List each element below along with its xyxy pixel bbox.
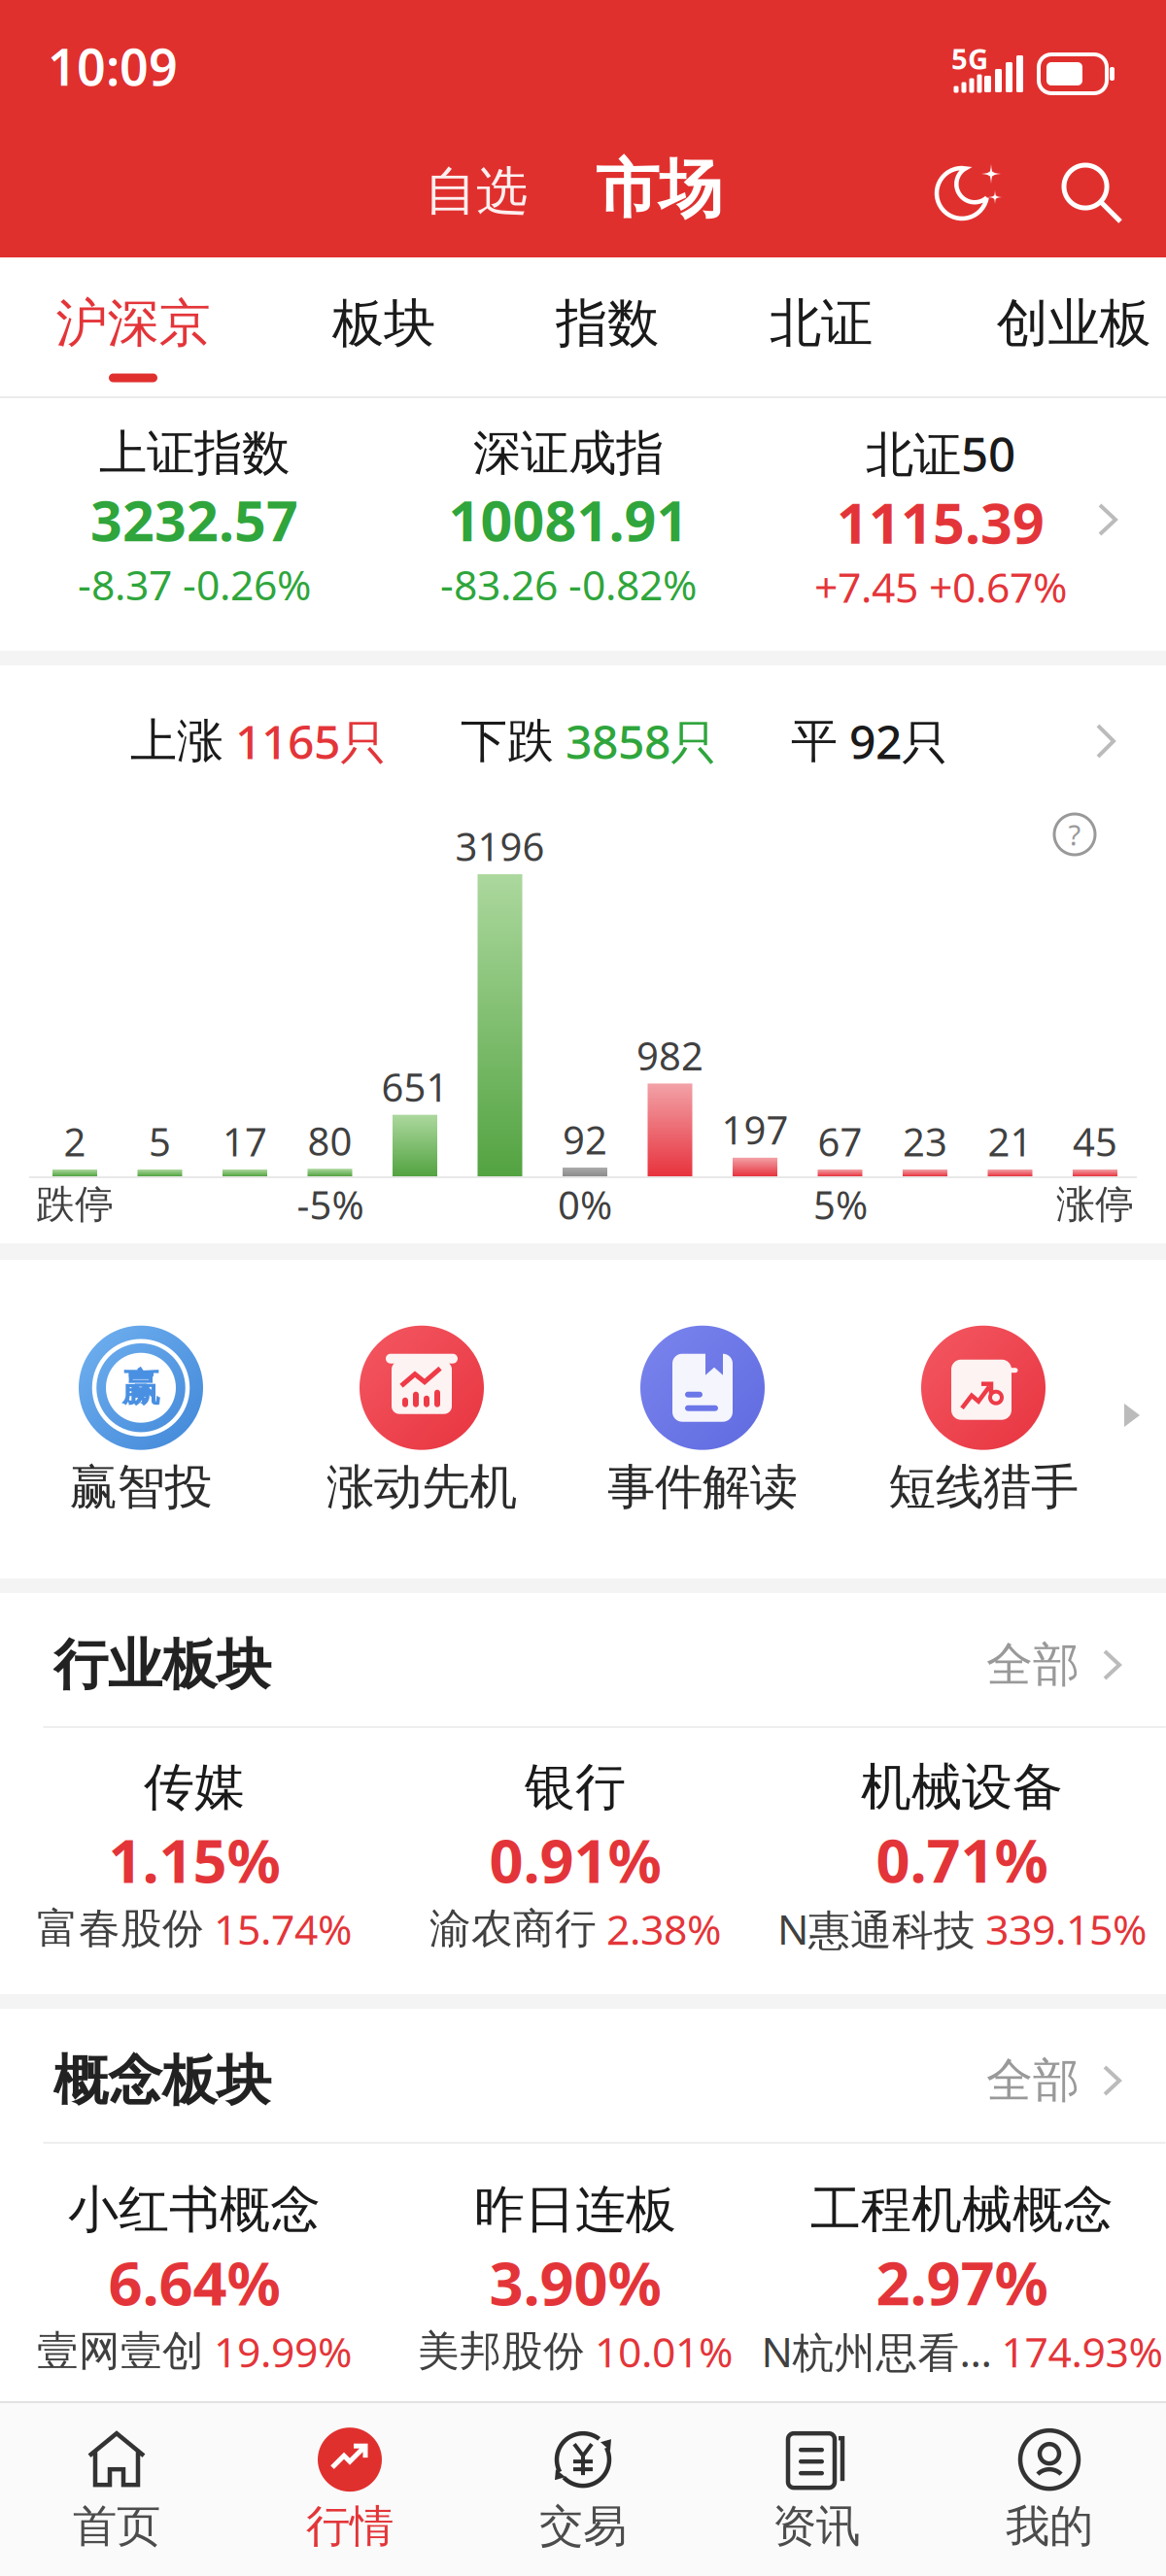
staticText: 小红书概念 — [68, 2179, 321, 2241]
button[interactable]: 北证 — [770, 292, 873, 355]
staticText: 651 — [381, 1061, 448, 1112]
button[interactable]: 市场 — [596, 150, 722, 228]
staticText: 5% — [813, 1179, 868, 1230]
button[interactable]: 传媒 — [37, 1756, 352, 1956]
button[interactable]: 工程机械概念 — [761, 2179, 1163, 2379]
staticText: 工程机械概念 — [810, 2179, 1114, 2241]
staticText: 上证指数 — [99, 424, 290, 483]
staticText: 2.97% — [876, 2243, 1048, 2322]
staticText: 19.99% — [214, 2324, 352, 2379]
staticText: -83.26 -0.82% — [440, 557, 697, 612]
button[interactable]: 指数 — [556, 292, 659, 355]
staticText: 富春股份 — [37, 1903, 204, 1954]
staticText: 10:09 — [48, 33, 178, 100]
staticText: 339.15% — [985, 1901, 1147, 1956]
button[interactable]: 板块 — [332, 292, 435, 355]
staticText: 15.74% — [214, 1901, 352, 1956]
button[interactable]: 昨日连板 — [418, 2179, 733, 2379]
staticText: 概念板块 — [53, 2047, 271, 2114]
staticText: 197 — [721, 1104, 789, 1155]
button[interactable]: 赢 — [69, 1326, 212, 1517]
button[interactable]: 北证50 — [814, 421, 1067, 614]
staticText: 涨停 — [1056, 1181, 1134, 1228]
button[interactable]: 我的 — [1006, 2428, 1093, 2554]
staticText: 创业板 — [996, 292, 1151, 355]
staticText: 3.90% — [489, 2243, 661, 2322]
staticText: 板块 — [332, 292, 435, 355]
staticText: 下跌 — [461, 712, 554, 770]
button[interactable]: 概念板块 — [0, 2047, 1166, 2114]
button[interactable]: 创业板 — [996, 292, 1151, 355]
staticText: 赢 — [121, 1364, 160, 1412]
staticText: 资讯 — [772, 2499, 860, 2554]
staticText: 跌停 — [36, 1181, 114, 1228]
staticText: 21 — [988, 1115, 1032, 1167]
button[interactable]: 事件解读 — [607, 1326, 798, 1517]
staticText: 壹网壹创 — [37, 2326, 204, 2377]
staticText: 自选 — [425, 159, 528, 223]
staticText: 3196 — [455, 820, 545, 872]
staticText: 80 — [308, 1115, 352, 1166]
button[interactable]: 搜索 — [1064, 165, 1120, 221]
staticText: 982 — [636, 1030, 703, 1081]
button[interactable]: 上证指数 — [78, 424, 311, 612]
button[interactable]: 自选 — [425, 159, 528, 223]
staticText: 67 — [818, 1115, 862, 1167]
staticText: 深证成指 — [473, 424, 664, 483]
button[interactable]: 交易 — [539, 2428, 627, 2554]
staticText: 3232.57 — [90, 483, 298, 557]
button[interactable]: 资讯 — [772, 2428, 860, 2554]
staticText: 2 — [64, 1115, 86, 1167]
staticText: 92 — [563, 1114, 607, 1165]
staticText: 全部 — [986, 1636, 1080, 1694]
staticText: 6.64% — [108, 2243, 280, 2322]
button[interactable]: 首页 — [73, 2428, 160, 2554]
staticText: 我的 — [1006, 2499, 1093, 2554]
staticText: 17 — [223, 1115, 267, 1167]
staticText: 10081.91 — [448, 483, 688, 557]
staticText: 174.93% — [1001, 2324, 1163, 2379]
staticText: 1165只 — [235, 710, 387, 772]
staticText: 平 — [791, 712, 838, 770]
staticText: 银行 — [525, 1756, 626, 1818]
staticText: 昨日连板 — [474, 2179, 676, 2241]
button[interactable]: 说明 — [1054, 814, 1095, 855]
staticText: 机械设备 — [861, 1756, 1063, 1818]
staticText: 首页 — [73, 2499, 160, 2554]
button[interactable]: 上涨 — [130, 710, 948, 772]
button[interactable]: 行情 — [306, 2428, 394, 2554]
staticText: 5 — [149, 1115, 171, 1167]
staticText: N杭州思看... — [761, 2324, 992, 2379]
staticText: 渝农商行 — [429, 1903, 597, 1954]
button[interactable]: 沪深京 — [56, 292, 210, 355]
staticText: 市场 — [596, 150, 722, 228]
staticText: 5G — [951, 39, 988, 77]
button[interactable]: 银行 — [429, 1756, 721, 1956]
staticText: 传媒 — [144, 1756, 245, 1818]
staticText: 0% — [558, 1179, 612, 1230]
staticText: 涨动先机 — [326, 1458, 517, 1517]
button[interactable]: 机械设备 — [777, 1756, 1147, 1956]
staticText: 1115.39 — [837, 485, 1045, 559]
button[interactable]: 小红书概念 — [37, 2179, 352, 2379]
button[interactable]: 夜间模式 — [937, 162, 1007, 222]
staticText: 92只 — [849, 710, 948, 772]
button[interactable]: 深证成指 — [440, 424, 697, 612]
staticText: 北证50 — [866, 421, 1015, 485]
staticText: 1.15% — [108, 1820, 280, 1899]
staticText: 0.71% — [876, 1820, 1048, 1899]
button[interactable]: 短线猎手 — [888, 1326, 1079, 1517]
staticText: +7.45 +0.67% — [814, 559, 1067, 614]
staticText: 23 — [903, 1115, 947, 1167]
staticText: 全部 — [986, 2052, 1080, 2109]
staticText: 45 — [1073, 1115, 1117, 1167]
staticText: 北证 — [770, 292, 873, 355]
button[interactable]: 涨动先机 — [326, 1326, 517, 1517]
staticText: 2.38% — [606, 1901, 721, 1956]
staticText: -5% — [297, 1179, 364, 1230]
staticText: 10.01% — [595, 2324, 733, 2379]
button[interactable]: 行业板块 — [0, 1631, 1166, 1698]
staticText: N惠通科技 — [777, 1901, 976, 1956]
staticText: 交易 — [539, 2499, 627, 2554]
staticText: 沪深京 — [56, 292, 210, 355]
